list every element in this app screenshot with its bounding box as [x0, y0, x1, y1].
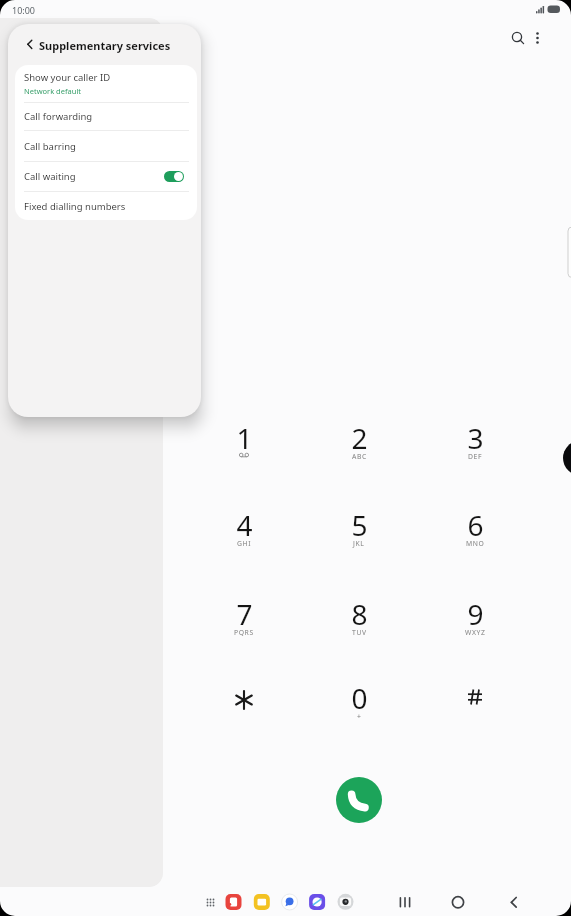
button[interactable]: 9 [437, 595, 513, 641]
button[interactable]: 7 [206, 595, 282, 641]
staticText: + [357, 712, 362, 721]
staticText: ABC [352, 452, 367, 461]
staticText: Network default [24, 86, 82, 96]
staticText: Call forwarding [24, 110, 93, 123]
button[interactable]: Show your caller ID [15, 65, 197, 102]
button[interactable] [527, 26, 548, 47]
button[interactable]: 1 [206, 419, 282, 465]
staticText: TUV [352, 628, 367, 637]
button[interactable] [445, 889, 472, 916]
staticText: WXYZ [465, 628, 486, 637]
button[interactable] [312, 888, 340, 916]
button[interactable]: 3 [437, 419, 513, 465]
staticText: 6 [467, 506, 484, 539]
staticText: Call waiting [24, 170, 76, 183]
button[interactable]: 4 [206, 506, 282, 552]
staticText: 10:00 [12, 4, 36, 16]
button[interactable]: 6 [437, 506, 513, 552]
staticText: 2 [351, 419, 368, 452]
button[interactable]: Fixed dialling numbers [15, 192, 197, 220]
staticText: Supplementary services [39, 38, 171, 53]
staticText: MNO [466, 539, 485, 548]
button[interactable]: 2 [321, 419, 397, 465]
staticText: 0 [351, 679, 368, 712]
staticText: 7 [236, 595, 253, 628]
staticText: GHI [237, 539, 252, 548]
staticText: DEF [468, 452, 483, 461]
button[interactable] [284, 888, 312, 916]
staticText: 9 [467, 595, 484, 628]
staticText: Show your caller ID [24, 71, 111, 84]
staticText: 1 [236, 419, 253, 452]
button[interactable] [392, 889, 419, 916]
button[interactable] [445, 673, 505, 721]
staticText: 4 [236, 506, 253, 539]
button[interactable] [256, 888, 284, 916]
staticText: PQRS [234, 628, 254, 637]
button[interactable]: 5 [321, 506, 397, 552]
button[interactable]: Call waiting [15, 162, 197, 191]
button[interactable] [336, 777, 382, 823]
button[interactable] [340, 888, 368, 916]
staticText: Call barring [24, 140, 76, 153]
button[interactable] [18, 32, 40, 56]
staticText: 8 [351, 595, 368, 628]
button[interactable] [200, 888, 228, 916]
staticText: 5 [351, 506, 368, 539]
staticText: JKL [353, 539, 365, 548]
button[interactable]: 8 [321, 595, 397, 641]
button[interactable] [164, 171, 184, 182]
button[interactable]: 0 [321, 679, 397, 725]
button[interactable] [228, 888, 256, 916]
staticText: Fixed dialling numbers [24, 200, 126, 213]
staticText: 3 [467, 419, 484, 452]
button[interactable]: Call barring [15, 131, 197, 161]
button[interactable] [500, 889, 527, 916]
button[interactable] [214, 676, 274, 724]
button[interactable]: Call forwarding [15, 103, 197, 130]
button[interactable] [506, 26, 530, 50]
